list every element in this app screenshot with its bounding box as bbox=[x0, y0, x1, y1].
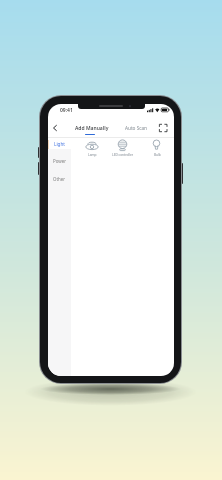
staticText: Lamp bbox=[88, 153, 97, 157]
staticText: Other bbox=[53, 176, 66, 182]
button[interactable] bbox=[156, 121, 170, 135]
staticText: Bulb bbox=[154, 153, 161, 157]
button[interactable]: Other bbox=[48, 173, 71, 185]
staticText: 09:41 bbox=[60, 107, 73, 114]
button[interactable]: Add Manually bbox=[69, 121, 114, 135]
button[interactable] bbox=[49, 121, 61, 135]
button[interactable]: LED controller bbox=[108, 139, 138, 157]
staticText: Power bbox=[53, 158, 66, 164]
button[interactable]: Light bbox=[48, 138, 71, 149]
staticText: LED controller bbox=[112, 153, 134, 157]
staticText: Add Manually bbox=[75, 125, 109, 132]
button[interactable]: Auto Scan bbox=[120, 121, 151, 135]
button[interactable]: Bulb bbox=[142, 139, 172, 157]
staticText: Light bbox=[54, 141, 65, 147]
button[interactable]: Power bbox=[48, 155, 71, 167]
staticText: Auto Scan bbox=[125, 125, 147, 131]
button[interactable]: Lamp bbox=[77, 139, 107, 157]
